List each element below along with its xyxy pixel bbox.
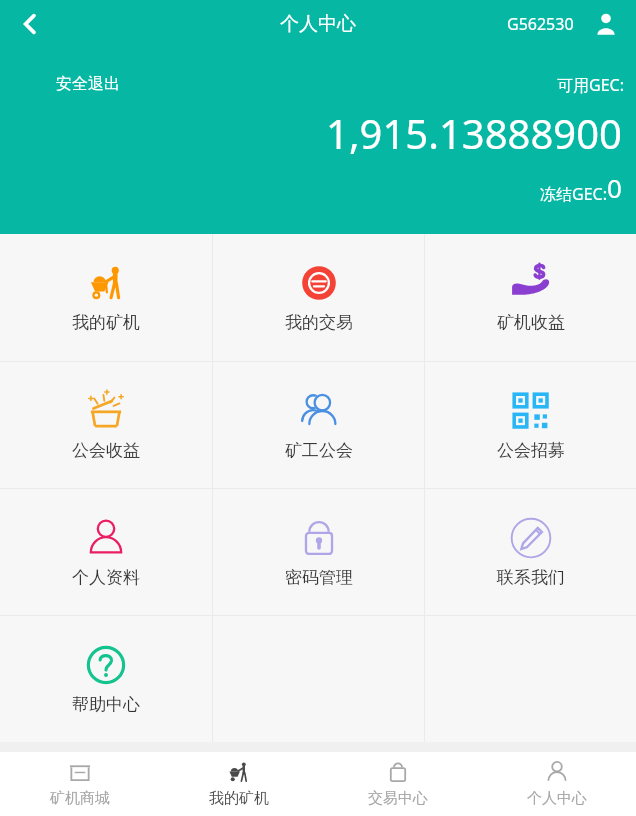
staticText: 我的矿机 (209, 789, 269, 808)
staticText: 密码管理 (285, 567, 353, 588)
staticText: 矿机收益 (497, 312, 565, 333)
button[interactable]: 矿工公会 (213, 362, 424, 488)
staticText: 个人中心 (280, 12, 356, 36)
staticText: 我的矿机 (72, 312, 140, 333)
staticText: 交易中心 (368, 789, 428, 808)
staticText: 冻结GEC: (540, 183, 607, 205)
button[interactable]: Back (6, 0, 54, 48)
button[interactable]: 我的矿机 (159, 752, 318, 816)
staticText: 我的交易 (285, 312, 353, 333)
button[interactable]: 我的矿机 (0, 234, 212, 361)
button[interactable]: 联系我们 (425, 489, 636, 615)
staticText: 0 (607, 170, 622, 205)
staticText: G562530 (507, 13, 574, 35)
staticText: 帮助中心 (72, 694, 140, 715)
staticText: 可用GEC: (557, 74, 624, 96)
button[interactable]: 公会招募 (425, 362, 636, 488)
button[interactable]: Profile (584, 2, 628, 46)
button[interactable]: 矿机商城 (0, 752, 159, 816)
staticText: 矿工公会 (285, 440, 353, 461)
button[interactable]: 密码管理 (213, 489, 424, 615)
staticText: 联系我们 (497, 567, 565, 588)
staticText: 公会招募 (497, 440, 565, 461)
button[interactable]: 帮助中心 (0, 616, 212, 742)
button[interactable]: 个人资料 (0, 489, 212, 615)
button[interactable]: 安全退出 (56, 74, 120, 94)
staticText: 个人资料 (72, 567, 140, 588)
staticText: 1,915.13888900 (326, 106, 622, 160)
staticText: 个人中心 (527, 789, 587, 808)
button[interactable]: 交易中心 (318, 752, 477, 816)
button[interactable]: 矿机收益 (425, 234, 636, 361)
staticText: 矿机商城 (50, 789, 110, 808)
staticText: 公会收益 (72, 440, 140, 461)
button[interactable]: 公会收益 (0, 362, 212, 488)
button[interactable]: 我的交易 (213, 234, 424, 361)
button[interactable]: 个人中心 (477, 752, 636, 816)
